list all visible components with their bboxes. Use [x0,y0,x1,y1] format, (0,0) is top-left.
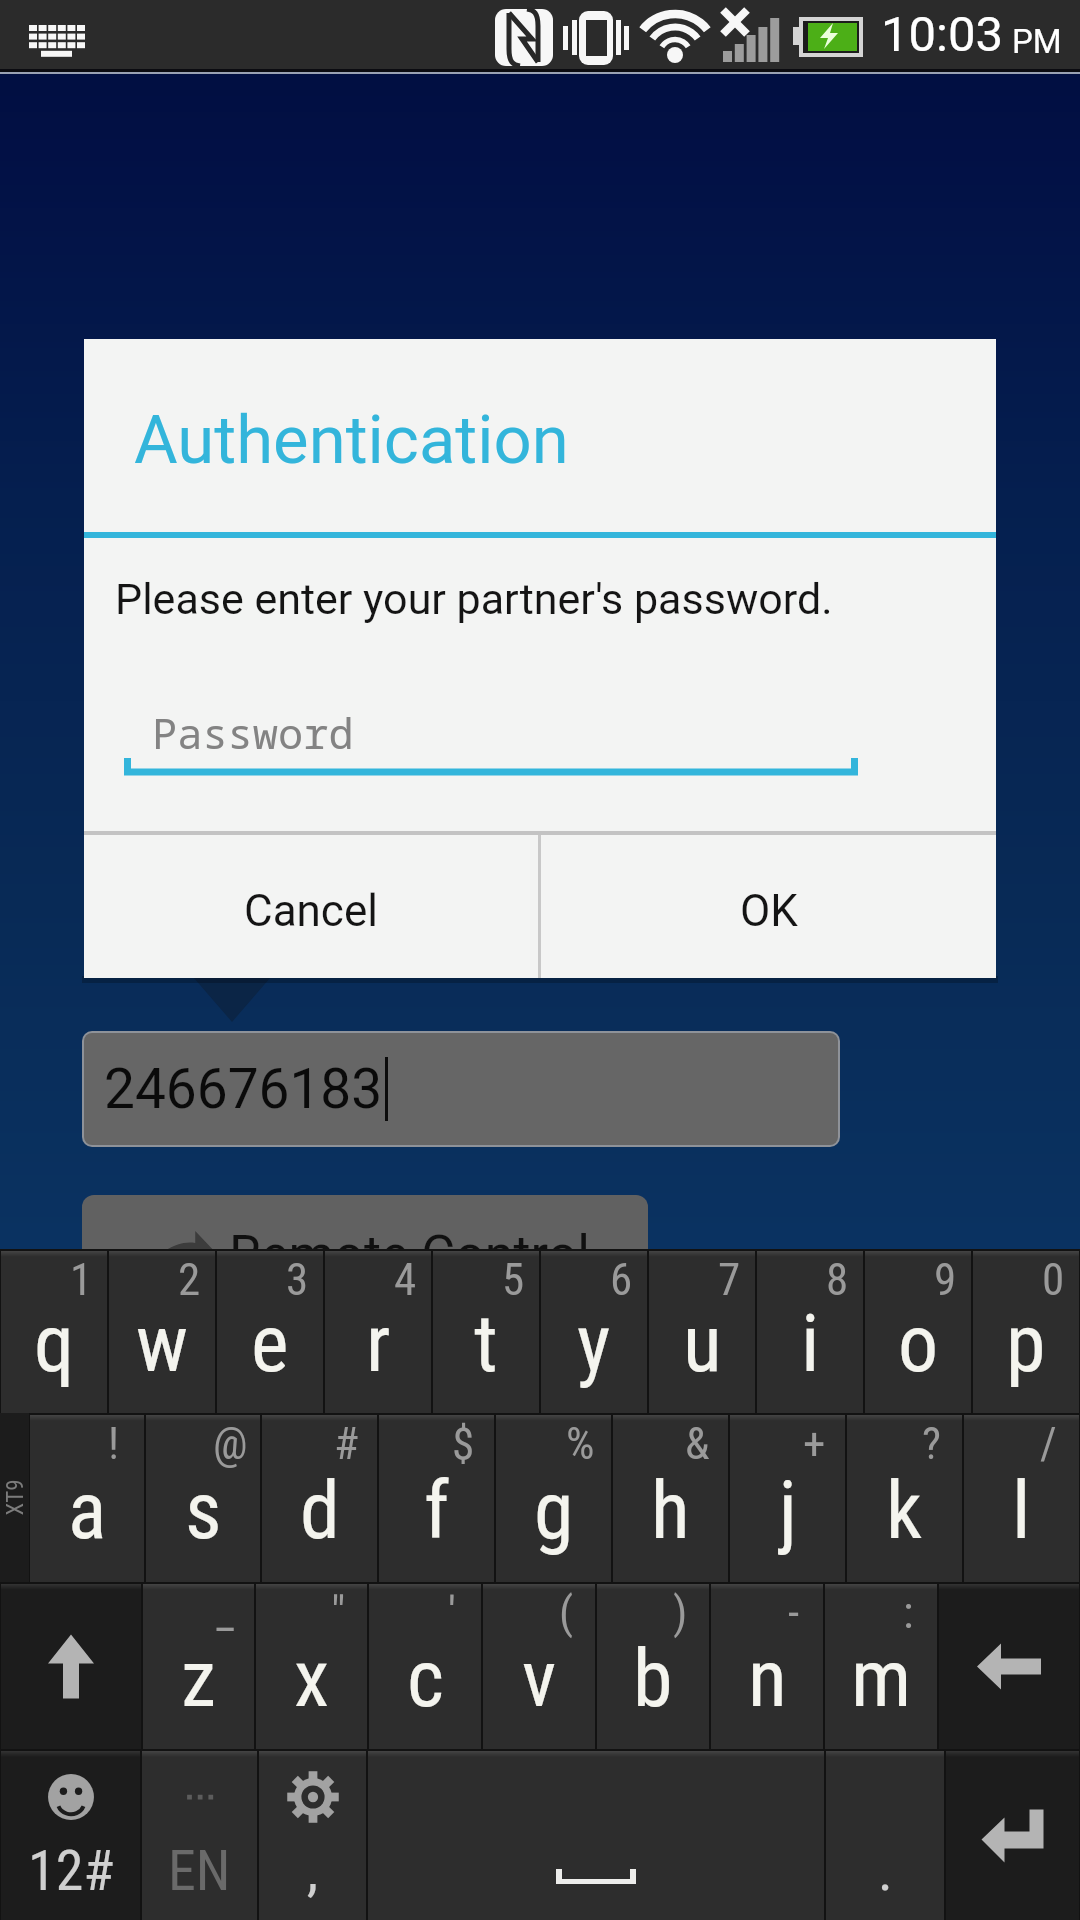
staticText: + [803,1417,826,1470]
button[interactable]: Enter [946,1751,1079,1920]
button[interactable]: ? [847,1415,962,1582]
staticText: g [534,1464,574,1558]
button[interactable]: 8 [757,1251,863,1413]
button[interactable]: " [256,1584,367,1749]
staticText: 10:03 [881,6,1004,63]
staticText: n [748,1632,787,1726]
staticText: d [300,1464,340,1558]
staticText: & [685,1417,710,1470]
staticText: OK [740,885,798,937]
staticText: h [651,1464,690,1558]
button[interactable]: _ [143,1584,254,1749]
button[interactable]: @ [146,1415,260,1582]
button[interactable]: 1 [1,1251,107,1413]
staticText: v [522,1632,557,1726]
button[interactable]: 7 [649,1251,755,1413]
staticText: 1 [70,1253,93,1306]
staticText: Password [152,704,354,761]
staticText: e [251,1297,289,1391]
button[interactable]: , [259,1751,366,1920]
staticText: Remote Control [229,1224,591,1285]
staticText: PM [1012,22,1062,61]
staticText: - [788,1586,800,1639]
staticText: q [34,1297,75,1391]
button[interactable]: 2 [109,1251,215,1413]
staticText: 9 [934,1253,957,1306]
button[interactable]: 12# [1,1751,140,1920]
staticText: f [424,1464,450,1558]
button[interactable]: % [496,1415,611,1582]
button[interactable]: Remote Control [82,1195,648,1321]
button[interactable]: Backspace [939,1584,1079,1749]
button[interactable]: - [711,1584,823,1749]
staticText: w [136,1297,188,1391]
button[interactable]: 3 [217,1251,323,1413]
staticText: o [898,1297,939,1391]
button[interactable]: # [262,1415,377,1582]
button[interactable]: ! [30,1415,144,1582]
staticText: 12# [28,1838,114,1904]
button[interactable]: Cancel [84,835,538,978]
button[interactable]: . [826,1751,944,1920]
staticText: % [566,1417,595,1470]
staticText: p [1006,1297,1046,1391]
staticText: Cancel [244,885,378,937]
button[interactable]: / [964,1415,1079,1582]
staticText: ' [448,1586,456,1639]
staticText: ( [559,1586,574,1639]
staticText: 2 [178,1253,201,1306]
staticText: m [851,1632,912,1726]
button[interactable]: ) [597,1584,709,1749]
button[interactable]: 4 [325,1251,431,1413]
button[interactable]: & [613,1415,728,1582]
button[interactable]: 5 [433,1251,539,1413]
button[interactable]: 246676183 [84,1033,838,1145]
staticText: 5 [502,1253,525,1306]
button[interactable]: XT9 [0,1413,29,1582]
staticText: 4 [394,1253,417,1306]
staticText: @ [213,1417,248,1470]
staticText: Please enter your partner's password. [115,574,833,624]
button[interactable]: 6 [541,1251,647,1413]
staticText: XT9 [1,1478,28,1515]
staticText: # [334,1417,359,1470]
staticText: i [801,1297,820,1391]
button[interactable]: ' [369,1584,481,1749]
staticText: s [185,1464,222,1558]
staticText: r [366,1297,391,1391]
staticText: j [779,1464,797,1558]
staticText: EN [168,1838,231,1904]
button[interactable]: Shift [1,1584,141,1749]
button[interactable]: EN [142,1751,257,1920]
staticText: " [331,1586,346,1639]
button[interactable]: OK [541,835,996,978]
staticText: 7 [718,1253,741,1306]
staticText: b [633,1632,673,1726]
button[interactable]: ( [483,1584,595,1749]
button[interactable]: 0 [973,1251,1079,1413]
staticText: 6 [610,1253,633,1306]
staticText: l [1012,1464,1031,1558]
staticText: z [181,1632,217,1726]
staticText: 0 [1042,1253,1065,1306]
staticText: _ [216,1586,235,1639]
button[interactable]: Space [368,1751,824,1920]
staticText: c [407,1632,444,1726]
staticText: : [903,1586,914,1639]
staticText: , [307,1838,319,1904]
staticText: 3 [286,1253,309,1306]
staticText: k [886,1464,923,1558]
button[interactable]: 9 [865,1251,971,1413]
staticText: x [294,1632,330,1726]
staticText: ) [673,1586,688,1639]
staticText: ! [108,1417,120,1470]
staticText: $ [452,1417,475,1470]
button[interactable]: $ [379,1415,494,1582]
staticText: . [878,1838,893,1904]
button[interactable]: : [825,1584,937,1749]
staticText: / [1040,1417,1057,1470]
button[interactable]: + [730,1415,845,1582]
staticText: Authentication [134,401,569,480]
staticText: 8 [826,1253,849,1306]
staticText: ? [922,1417,942,1470]
